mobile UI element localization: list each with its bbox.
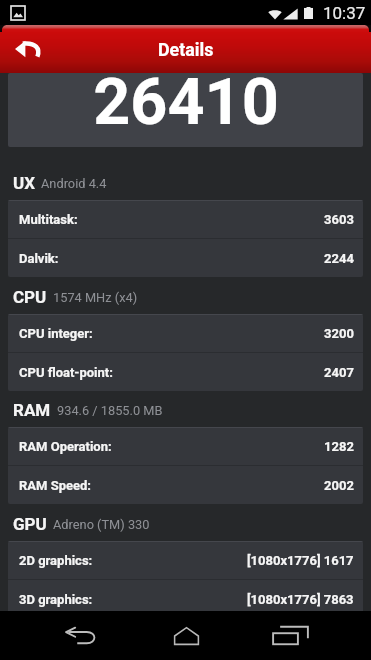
staticText: 2407 (324, 365, 354, 380)
button[interactable]: Recent apps (238, 611, 342, 660)
button[interactable]: Home (134, 611, 238, 660)
staticText: RAM Operation: (19, 439, 112, 454)
staticText: RAM Speed: (19, 478, 92, 493)
staticText: 3603 (324, 212, 354, 227)
staticText: RAM (13, 400, 51, 420)
staticText: GPU (13, 514, 47, 534)
staticText: 26410 (93, 73, 279, 138)
button[interactable]: Multitask: (8, 201, 363, 238)
staticText: Adreno (TM) 330 (53, 517, 150, 532)
button[interactable]: Back (30, 611, 134, 660)
staticText: 2244 (324, 251, 354, 266)
button[interactable]: CPU integer: (8, 315, 363, 352)
button[interactable]: 3D graphics: (8, 580, 363, 618)
button[interactable]: Dalvik: (8, 239, 363, 277)
button[interactable]: Back (9, 30, 47, 68)
staticText: Android 4.4 (41, 176, 107, 191)
staticText: CPU (13, 287, 47, 307)
staticText: 1574 MHz (x4) (53, 290, 138, 305)
staticText: 10:37 (323, 3, 366, 23)
staticText: Multitask: (19, 212, 78, 227)
staticText: [1080x1776] 1617 (247, 553, 354, 568)
button[interactable]: CPU float-point: (8, 353, 363, 391)
staticText: Details (158, 39, 214, 60)
button[interactable]: 2D graphics: (8, 542, 363, 579)
staticText: [1080x1776] 7863 (247, 592, 354, 607)
staticText: 2002 (324, 478, 354, 493)
staticText: Dalvik: (19, 251, 59, 266)
staticText: CPU integer: (19, 326, 93, 341)
staticText: CPU float-point: (19, 365, 113, 380)
staticText: 3200 (324, 326, 354, 341)
staticText: 3D graphics: (19, 592, 93, 607)
button[interactable]: RAM Operation: (8, 428, 363, 465)
staticText: 1282 (324, 439, 354, 454)
button[interactable]: RAM Speed: (8, 466, 363, 504)
staticText: 2D graphics: (19, 553, 93, 568)
staticText: UX (13, 173, 35, 193)
staticText: 934.6 / 1855.0 MB (57, 403, 163, 418)
